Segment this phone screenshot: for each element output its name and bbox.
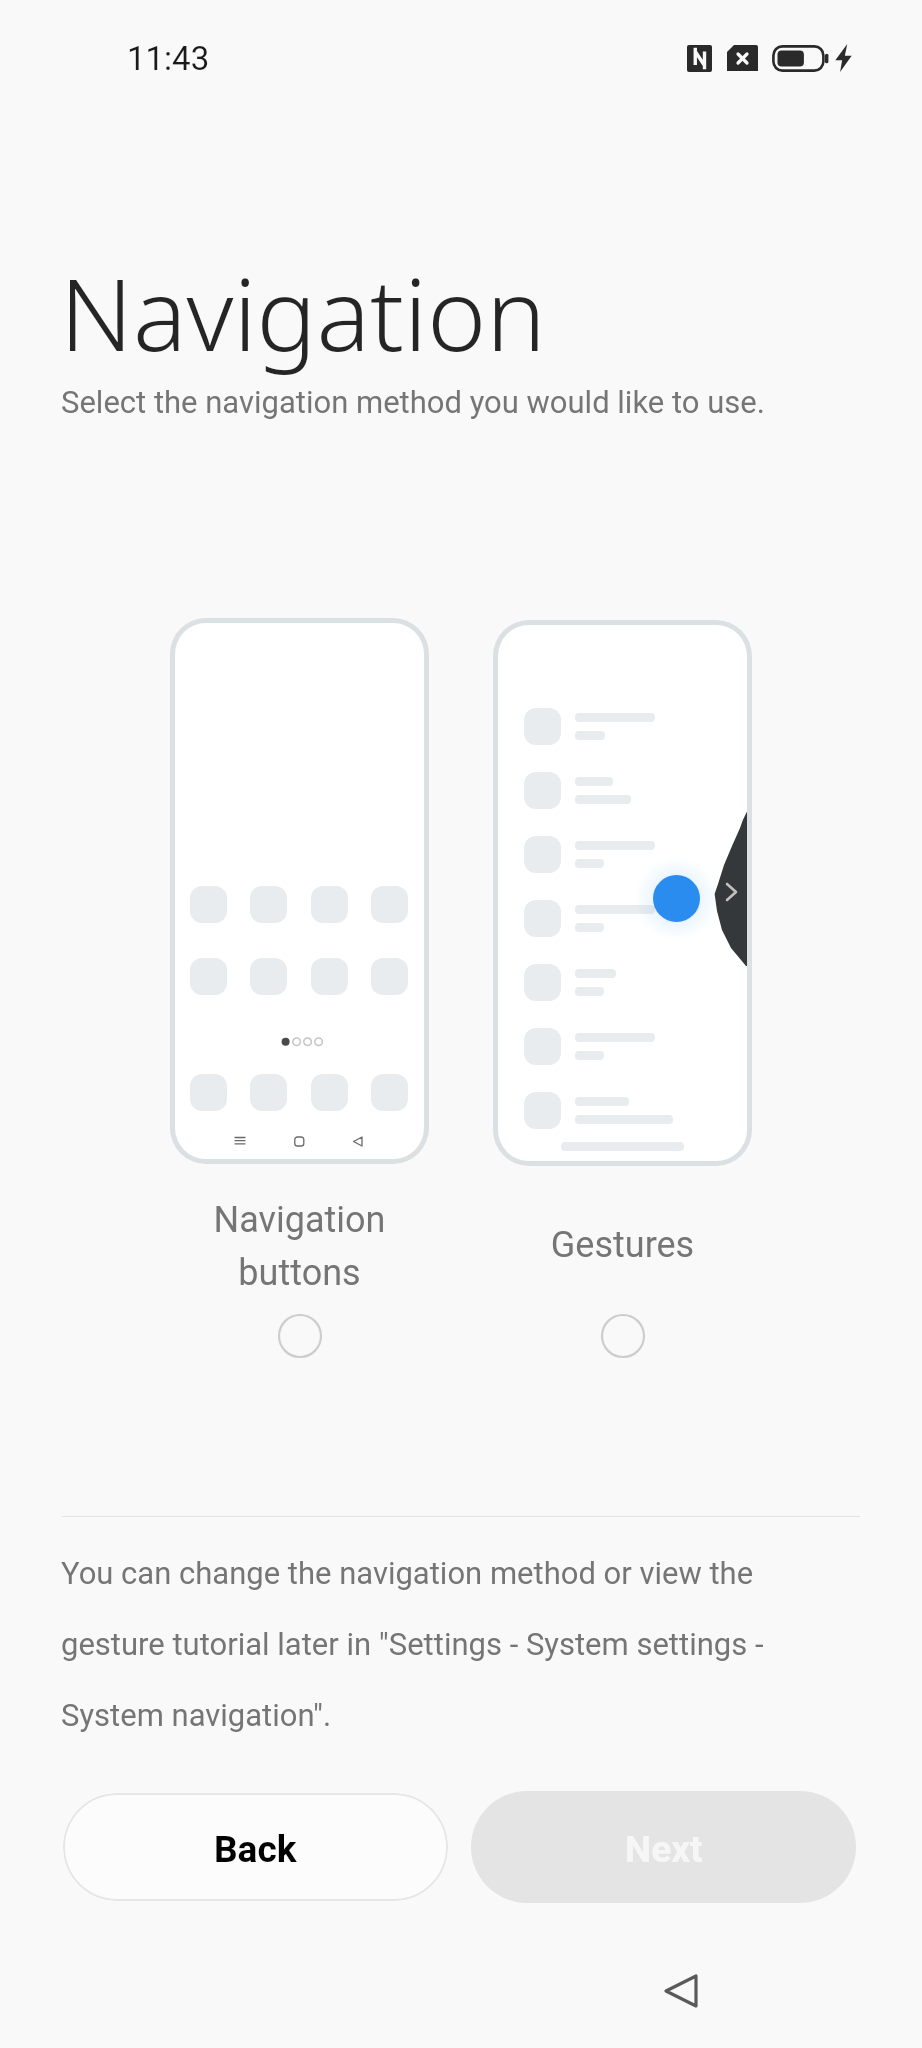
button[interactable]: Gestures	[493, 1224, 752, 1284]
staticText: Navigation buttons	[170, 1199, 429, 1294]
button[interactable]: Back	[651, 1961, 711, 2021]
button[interactable]: Gestures preview	[493, 620, 752, 1166]
button[interactable]: Select navigation buttons	[278, 1314, 322, 1358]
staticText: Navigation	[60, 244, 546, 380]
button[interactable]: Select gestures	[601, 1314, 645, 1358]
staticText: 11:43	[127, 39, 210, 78]
staticText: Select the navigation method you would l…	[61, 384, 765, 420]
button[interactable]: Next	[471, 1791, 856, 1903]
button[interactable]: Navigation buttons	[170, 1199, 429, 1309]
staticText: Next	[625, 1828, 703, 1871]
staticText: You can change the navigation method or …	[61, 1555, 801, 1734]
button[interactable]: Navigation buttons preview	[170, 618, 429, 1164]
button[interactable]: Back	[63, 1793, 448, 1901]
staticText: Gestures	[493, 1224, 752, 1266]
staticText: Back	[214, 1828, 297, 1871]
